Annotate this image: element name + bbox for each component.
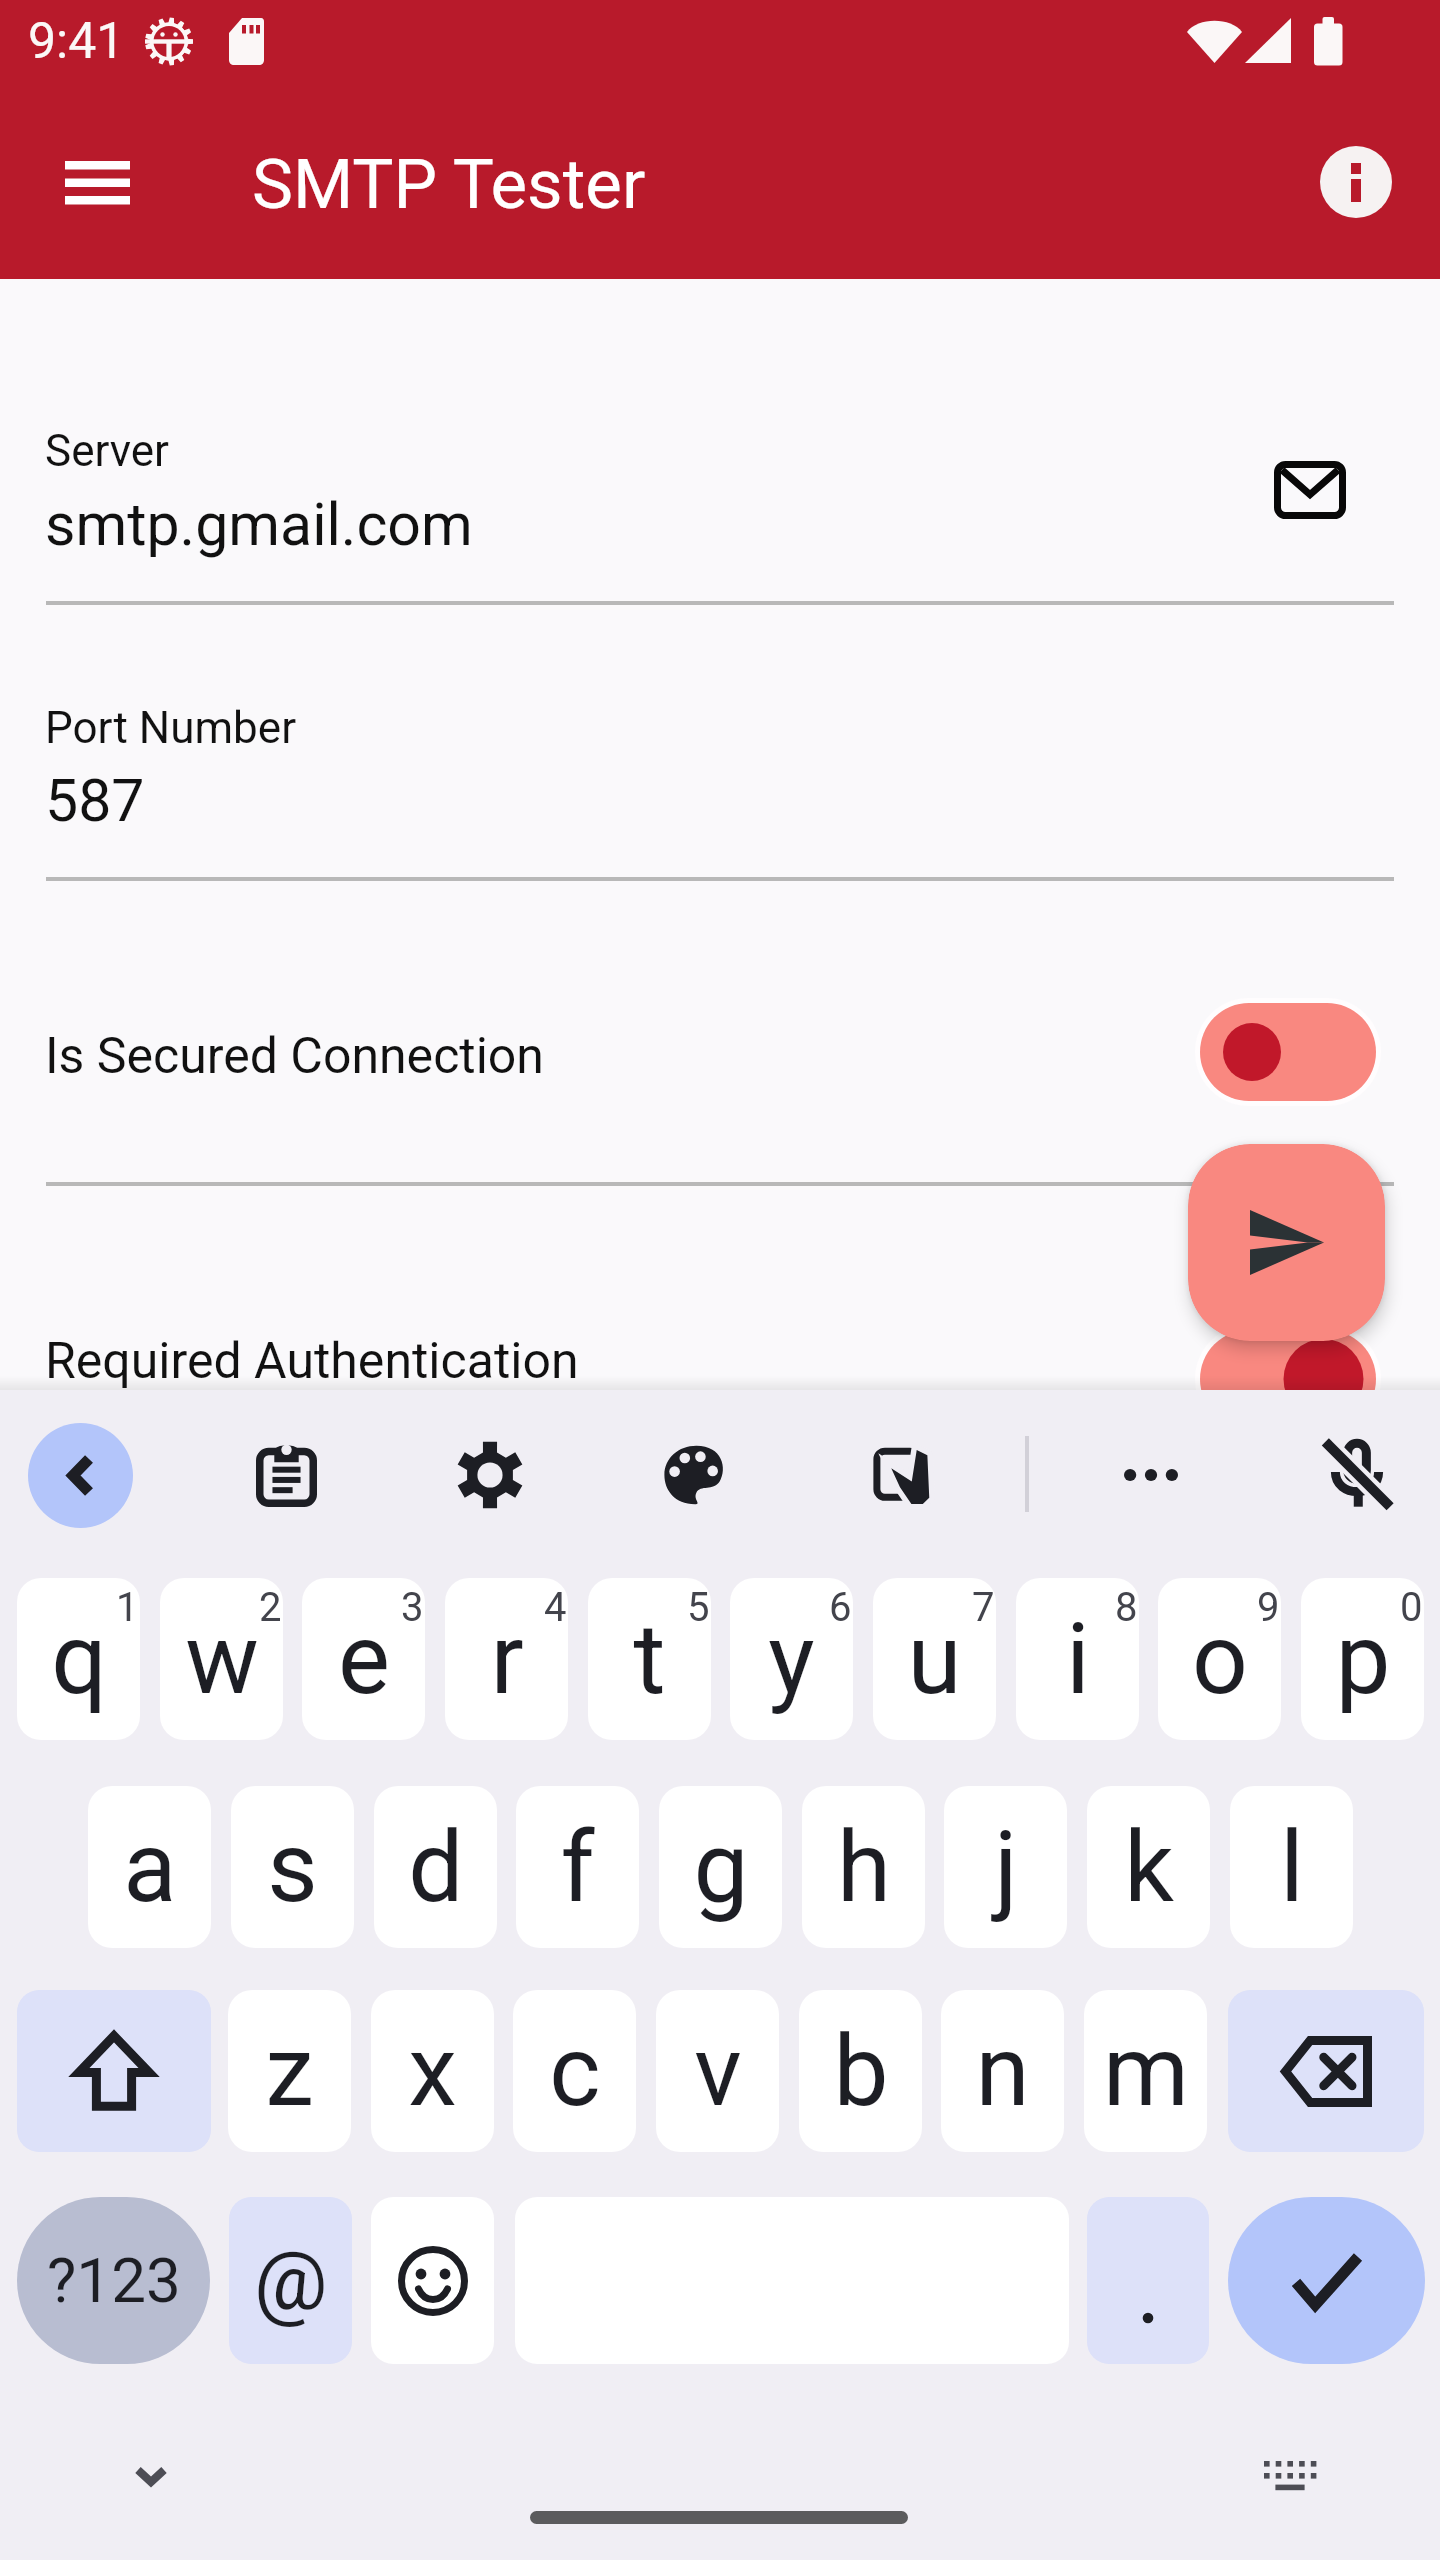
staticText: 8: [1115, 1584, 1138, 1631]
button[interactable]: Back: [28, 1423, 133, 1528]
staticText: a: [123, 1810, 177, 1925]
button[interactable]: o: [1158, 1578, 1281, 1740]
staticText: Port Number: [45, 702, 297, 754]
staticText: Required Authentication: [45, 1332, 579, 1391]
button[interactable]: w: [160, 1578, 283, 1740]
button[interactable]: z: [228, 1990, 351, 2152]
button[interactable]: g: [659, 1786, 782, 1948]
staticText: y: [768, 1602, 815, 1717]
staticText: j: [994, 1810, 1018, 1925]
button[interactable]: Enter: [1228, 2197, 1425, 2364]
staticText: t: [633, 1602, 666, 1717]
button[interactable]: Hide keyboard: [99, 2424, 203, 2528]
button[interactable]: Keyboard settings: [438, 1423, 542, 1527]
staticText: k: [1124, 1810, 1174, 1925]
button[interactable]: d: [374, 1786, 497, 1948]
staticText: c: [549, 2014, 601, 2129]
button[interactable]: p: [1301, 1578, 1424, 1740]
staticText: 9:41: [28, 12, 125, 71]
staticText: 0: [1400, 1584, 1423, 1631]
button[interactable]: Is Secured Connection toggle: [1190, 997, 1386, 1107]
staticText: r: [490, 1602, 524, 1717]
staticText: SMTP Tester: [252, 144, 646, 225]
button[interactable]: f: [516, 1786, 639, 1948]
button[interactable]: h: [802, 1786, 925, 1948]
staticText: m: [1103, 2014, 1189, 2129]
staticText: Server: [45, 425, 170, 477]
button[interactable]: a: [88, 1786, 211, 1948]
staticText: 1: [116, 1584, 139, 1631]
staticText: 2: [259, 1584, 282, 1631]
button[interactable]: n: [941, 1990, 1064, 2152]
staticText: d: [408, 1810, 464, 1925]
button[interactable]: Voice input disabled: [1305, 1423, 1409, 1527]
button[interactable]: r: [445, 1578, 568, 1740]
staticText: p: [1335, 1602, 1391, 1717]
staticText: ?123: [47, 2244, 181, 2317]
button[interactable]: j: [944, 1786, 1067, 1948]
staticText: g: [693, 1810, 749, 1925]
button[interactable]: Open navigation drawer: [36, 122, 158, 244]
button[interactable]: l: [1230, 1786, 1353, 1948]
staticText: u: [907, 1602, 962, 1717]
button[interactable]: x: [371, 1990, 494, 2152]
button[interactable]: ?123: [17, 2197, 210, 2364]
button[interactable]: Clipboard: [234, 1423, 338, 1527]
button[interactable]: Choose mail provider: [1255, 435, 1365, 545]
staticText: 3: [401, 1584, 424, 1631]
button[interactable]: Backspace: [1228, 1990, 1424, 2152]
staticText: x: [408, 2014, 457, 2129]
staticText: b: [833, 2014, 889, 2129]
staticText: Is Secured Connection: [45, 1027, 544, 1086]
button[interactable]: Handwriting: [848, 1423, 952, 1527]
button[interactable]: i: [1016, 1578, 1139, 1740]
button[interactable]: More options: [1099, 1423, 1203, 1527]
button[interactable]: @: [229, 2197, 352, 2364]
button[interactable]: About: [1296, 122, 1416, 242]
button[interactable]: c: [513, 1990, 636, 2152]
staticText: 4: [544, 1584, 567, 1631]
button[interactable]: Switch input method: [1238, 2424, 1342, 2528]
button[interactable]: k: [1087, 1786, 1210, 1948]
button[interactable]: b: [799, 1990, 922, 2152]
staticText: h: [837, 1810, 891, 1925]
button[interactable]: q: [17, 1578, 140, 1740]
button[interactable]: e: [302, 1578, 425, 1740]
button[interactable]: m: [1084, 1990, 1207, 2152]
staticText: 6: [829, 1584, 852, 1631]
staticText: f: [560, 1810, 595, 1925]
staticText: w: [185, 1602, 259, 1717]
staticText: l: [1280, 1810, 1304, 1925]
button[interactable]: Send test mail: [1188, 1144, 1385, 1341]
button[interactable]: s: [231, 1786, 354, 1948]
staticText: q: [51, 1602, 107, 1717]
staticText: z: [265, 2014, 314, 2129]
staticText: 7: [972, 1584, 995, 1631]
button[interactable]: Required Authentication toggle: [1190, 1324, 1386, 1434]
button[interactable]: y: [730, 1578, 853, 1740]
staticText: o: [1192, 1602, 1248, 1717]
staticText: v: [694, 2014, 742, 2129]
staticText: 587: [45, 766, 145, 835]
button[interactable]: t: [588, 1578, 711, 1740]
button[interactable]: v: [656, 1990, 779, 2152]
staticText: n: [975, 2014, 1030, 2129]
staticText: @: [254, 2233, 328, 2329]
button[interactable]: Period: [1087, 2197, 1209, 2364]
staticText: 5: [687, 1584, 710, 1631]
button[interactable]: Theme: [643, 1423, 747, 1527]
button[interactable]: Shift: [17, 1990, 211, 2152]
button[interactable]: Emoji: [371, 2197, 494, 2364]
staticText: i: [1066, 1602, 1090, 1717]
staticText: e: [338, 1602, 390, 1717]
staticText: smtp.gmail.com: [45, 490, 473, 559]
staticText: s: [267, 1810, 318, 1925]
staticText: 9: [1257, 1584, 1280, 1631]
button[interactable]: u: [873, 1578, 996, 1740]
